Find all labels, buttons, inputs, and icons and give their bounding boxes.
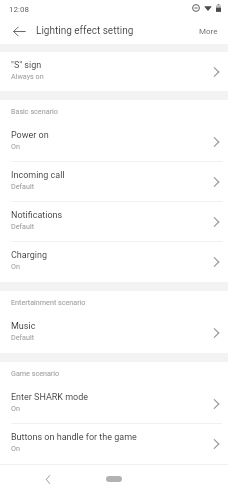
staticText: Game scenario bbox=[11, 369, 60, 377]
staticText: More bbox=[199, 27, 218, 36]
staticText: Basic scenario bbox=[11, 107, 58, 115]
staticText: 12:08 bbox=[9, 5, 29, 14]
staticText: Music bbox=[11, 321, 36, 332]
button[interactable]: Back bbox=[39, 470, 57, 488]
staticText: Enter SHARK mode bbox=[11, 392, 89, 403]
button[interactable]: Charging bbox=[0, 242, 228, 282]
button[interactable]: Buttons on handle for the game bbox=[0, 424, 228, 464]
staticText: On bbox=[11, 262, 20, 270]
staticText: "S" sign bbox=[11, 60, 42, 71]
button[interactable]: Home bbox=[106, 476, 122, 482]
button[interactable]: Music bbox=[0, 313, 228, 353]
button[interactable]: More bbox=[189, 22, 228, 41]
staticText: Notifications bbox=[11, 210, 63, 221]
staticText: Default bbox=[11, 182, 34, 190]
staticText: Charging bbox=[11, 250, 47, 261]
button[interactable]: Power on bbox=[0, 122, 228, 162]
staticText: Default bbox=[11, 222, 34, 230]
button[interactable]: Notifications bbox=[0, 202, 228, 242]
button[interactable]: Enter SHARK mode bbox=[0, 384, 228, 424]
staticText: Always on bbox=[11, 72, 44, 80]
staticText: Buttons on handle for the game bbox=[11, 432, 137, 443]
staticText: Lighting effect setting bbox=[36, 25, 134, 37]
staticText: On bbox=[11, 444, 20, 452]
staticText: Incoming call bbox=[11, 170, 65, 181]
staticText: Power on bbox=[11, 130, 49, 141]
button[interactable]: Back bbox=[8, 20, 30, 42]
staticText: Default bbox=[11, 333, 34, 341]
staticText: On bbox=[11, 404, 20, 412]
staticText: On bbox=[11, 142, 20, 150]
staticText: Entertainment scenario bbox=[11, 298, 86, 306]
button[interactable]: Incoming call bbox=[0, 162, 228, 202]
button[interactable]: "S" sign bbox=[0, 52, 228, 91]
